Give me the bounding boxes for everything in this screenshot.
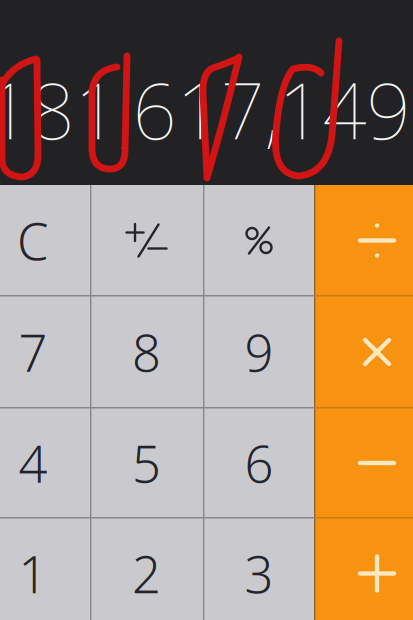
button[interactable]: Multiply [315, 296, 413, 408]
button[interactable]: 2 [90, 518, 203, 620]
button[interactable]: 6 [203, 408, 315, 518]
staticText: 8 [132, 318, 161, 386]
button[interactable]: 1 [0, 518, 90, 620]
staticText: 7 [18, 318, 47, 386]
button[interactable]: 7 [0, 296, 90, 408]
staticText: 6 [244, 429, 273, 497]
staticText: 181,617,149 [0, 58, 410, 161]
button[interactable]: 9 [203, 296, 315, 408]
staticText: 4 [18, 429, 47, 497]
button[interactable]: Divide [315, 185, 413, 296]
staticText: 1 [18, 540, 47, 607]
button[interactable]: C [0, 185, 90, 296]
staticText: C [17, 207, 49, 274]
staticText: 3 [244, 540, 273, 607]
button[interactable]: Percent [203, 185, 315, 296]
button[interactable]: 4 [0, 408, 90, 518]
button[interactable]: 3 [203, 518, 315, 620]
button[interactable]: Add [315, 518, 413, 620]
button[interactable]: Subtract [315, 408, 413, 518]
staticText: 9 [244, 318, 273, 386]
staticText: 5 [132, 429, 161, 497]
button[interactable]: 5 [90, 408, 203, 518]
button[interactable]: 8 [90, 296, 203, 408]
button[interactable]: Toggle sign [90, 185, 203, 296]
staticText: 2 [132, 540, 161, 607]
